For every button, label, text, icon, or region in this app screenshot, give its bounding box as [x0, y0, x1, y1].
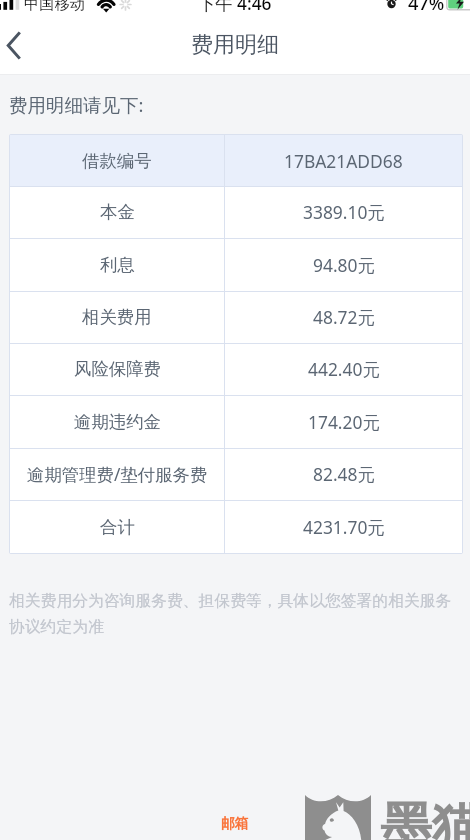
staticText: 逾期违约金 [74, 411, 161, 433]
staticText: 174.20元 [308, 410, 380, 434]
staticText: 82.48元 [313, 462, 375, 486]
staticText: 48.72元 [313, 305, 375, 329]
staticText: 4231.70元 [303, 515, 385, 539]
button[interactable]: 邮箱 [213, 808, 257, 839]
staticText: 逾期管理费/垫付服务费 [27, 462, 208, 486]
button[interactable]: 逾期违约金 [10, 395, 462, 448]
staticText: 相关费用 [82, 306, 152, 328]
staticText: 费用明细请见下: [9, 92, 144, 117]
staticText: 3389.10元 [303, 200, 385, 224]
button[interactable]: 利息 [10, 238, 462, 291]
staticText: 借款编号 [82, 150, 152, 172]
staticText: 相关费用分为咨询服务费、担保费等，具体以您签署的相关服务协议约定为准 [9, 591, 461, 636]
button[interactable]: 合计 [10, 500, 462, 553]
button[interactable]: 借款编号 [10, 135, 462, 186]
button[interactable]: 相关费用 [10, 291, 462, 343]
staticText: 94.80元 [313, 253, 375, 277]
staticText: 利息 [100, 254, 135, 276]
staticText: 风险保障费 [74, 358, 161, 380]
button[interactable]: 本金 [10, 186, 462, 238]
button[interactable]: 返回 [0, 22, 40, 75]
staticText: 中国移动 [24, 0, 85, 13]
button[interactable]: 逾期管理费/垫付服务费 [10, 448, 462, 500]
button[interactable]: 风险保障费 [10, 343, 462, 395]
staticText: 17BA21ADD68 [284, 149, 403, 173]
staticText: 本金 [100, 201, 135, 223]
staticText: 47% [408, 0, 445, 13]
staticText: 费用明细 [191, 31, 279, 59]
staticText: 合计 [100, 516, 135, 538]
staticText: 墨猫 [380, 795, 470, 840]
staticText: 442.40元 [308, 357, 380, 381]
staticText: 下午 4:46 [198, 0, 272, 14]
staticText: 邮箱 [221, 815, 249, 832]
